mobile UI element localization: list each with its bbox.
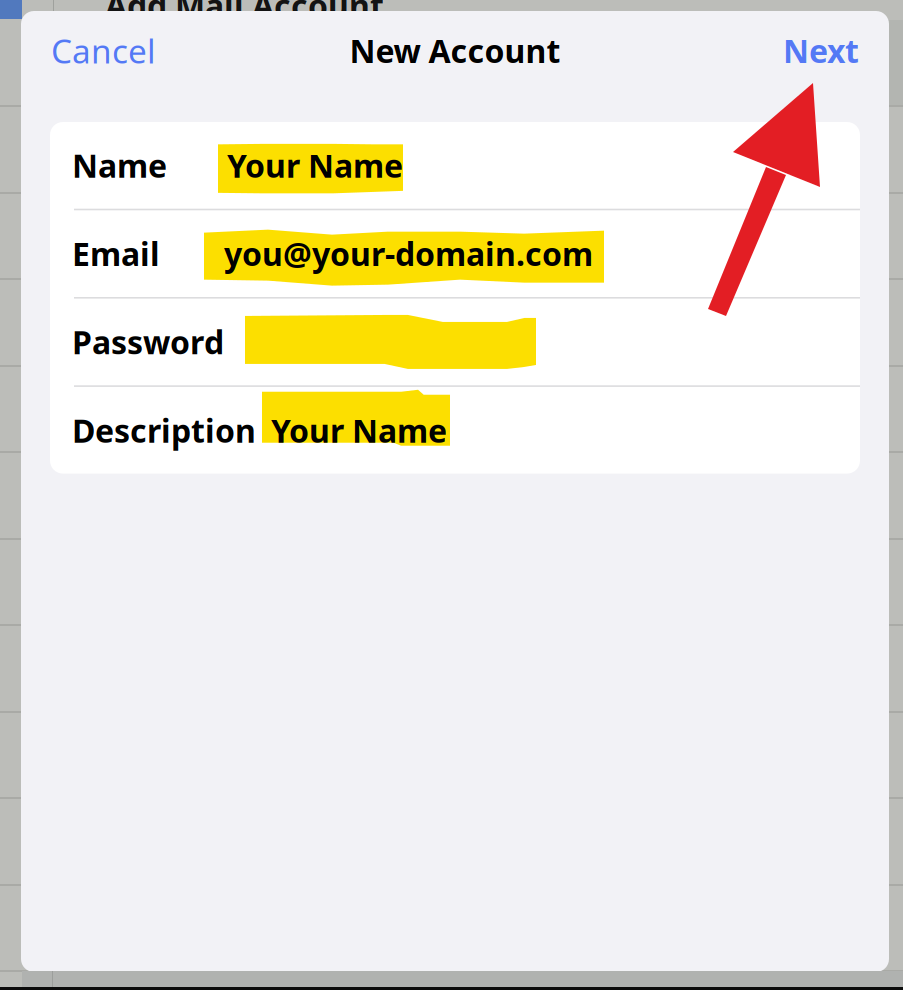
staticText: Name	[72, 144, 167, 187]
staticText: Password	[72, 321, 224, 363]
staticText: Add Mail Account	[105, 0, 384, 26]
staticText: New Account	[349, 29, 560, 72]
staticText: Description	[72, 409, 256, 451]
staticText: Next	[783, 29, 859, 72]
button[interactable]: Next	[773, 20, 869, 81]
staticText: Your Name	[227, 144, 403, 187]
button[interactable]: Cancel	[41, 19, 166, 82]
staticText: you@your-domain.com	[224, 232, 593, 275]
staticText: Email	[72, 232, 160, 275]
staticText: Cancel	[51, 28, 156, 73]
staticText: Your Name	[271, 409, 447, 451]
